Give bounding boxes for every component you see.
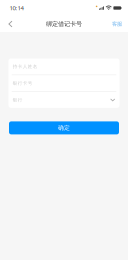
button[interactable]: 持卡人姓名 — [8, 58, 119, 74]
staticText: 10:14 — [9, 4, 23, 12]
staticText: 银行 — [13, 97, 23, 103]
staticText: 确定 — [58, 124, 70, 132]
staticText: 客服 — [112, 21, 122, 27]
button[interactable]: Back — [8, 16, 22, 32]
staticText: 银行卡号 — [13, 80, 33, 86]
button[interactable]: 银行 — [8, 92, 119, 108]
staticText: 持卡人姓名 — [13, 64, 38, 69]
button[interactable]: 确定 — [9, 121, 119, 134]
button[interactable]: 银行卡号 — [8, 75, 119, 91]
button[interactable]: 客服 — [112, 16, 122, 32]
staticText: 绑定借记卡号 — [46, 20, 82, 28]
